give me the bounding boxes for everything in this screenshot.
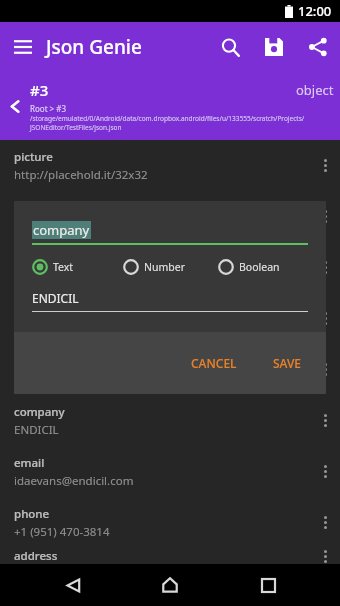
button[interactable]: picture <box>0 140 340 191</box>
staticText: phone <box>14 506 50 522</box>
button[interactable]: Search <box>208 25 252 69</box>
other: Back <box>0 72 30 140</box>
button[interactable]: age <box>0 191 340 242</box>
button[interactable]: More options <box>310 446 340 497</box>
staticText: Text <box>53 260 74 274</box>
button[interactable]: CANCEL <box>179 345 249 381</box>
button[interactable]: SAVE <box>261 345 314 381</box>
button[interactable]: More options <box>310 242 340 293</box>
button[interactable]: Recents <box>243 564 293 606</box>
button[interactable]: Save <box>252 25 296 69</box>
button[interactable]: More options <box>310 497 340 548</box>
staticText: +1 (951) 470-3814 <box>14 524 110 540</box>
button[interactable]: More options <box>310 293 340 344</box>
staticText: age <box>14 200 35 216</box>
button[interactable]: Share <box>296 25 340 69</box>
staticText: Json Genie <box>46 34 208 60</box>
staticText: Ida Evans <box>14 320 66 336</box>
staticText: name <box>14 302 46 318</box>
button[interactable]: Text <box>32 259 123 275</box>
staticText: idaevans@endicil.com <box>14 473 134 489</box>
button[interactable]: phone <box>0 497 340 548</box>
button[interactable]: company <box>0 395 340 446</box>
staticText: Boolean <box>239 260 280 274</box>
button[interactable]: Number <box>123 259 218 275</box>
button[interactable]: address <box>0 548 340 564</box>
staticText: company <box>14 404 65 420</box>
button[interactable]: email <box>0 446 340 497</box>
staticText: address <box>14 548 58 564</box>
staticText: object <box>296 81 334 99</box>
button[interactable]: Back <box>48 564 98 606</box>
button[interactable]: Back <box>0 72 340 140</box>
staticText: Root > #3 <box>30 103 67 114</box>
staticText: http://placehold.it/32x32 <box>14 167 148 183</box>
staticText: picture <box>14 149 53 165</box>
staticText: 12:00 <box>298 2 332 20</box>
button[interactable]: More options <box>310 191 340 242</box>
button[interactable]: More options <box>310 140 340 191</box>
staticText: email <box>14 455 45 471</box>
button[interactable]: More options <box>310 395 340 446</box>
staticText: brown <box>14 269 49 285</box>
staticText: Number <box>144 260 186 274</box>
staticText: company <box>33 221 90 239</box>
staticText: #3 <box>30 80 296 100</box>
staticText: eyeColor <box>14 251 63 267</box>
button[interactable]: More options <box>310 344 340 395</box>
staticText: ENDICIL <box>32 290 79 306</box>
button[interactable]: eyeColor <box>0 242 340 293</box>
button[interactable]: More options <box>310 548 340 564</box>
staticText: /storage/emulated/0/Android/data/com.dro… <box>30 114 334 132</box>
staticText: CANCEL <box>191 355 237 371</box>
staticText: SAVE <box>273 355 302 371</box>
button[interactable]: Menu <box>0 24 46 70</box>
button[interactable]: gender <box>0 344 340 395</box>
button[interactable]: Boolean <box>218 259 308 275</box>
staticText: ENDICIL <box>14 422 59 438</box>
button[interactable]: Home <box>145 564 195 606</box>
button[interactable]: name <box>0 293 340 344</box>
